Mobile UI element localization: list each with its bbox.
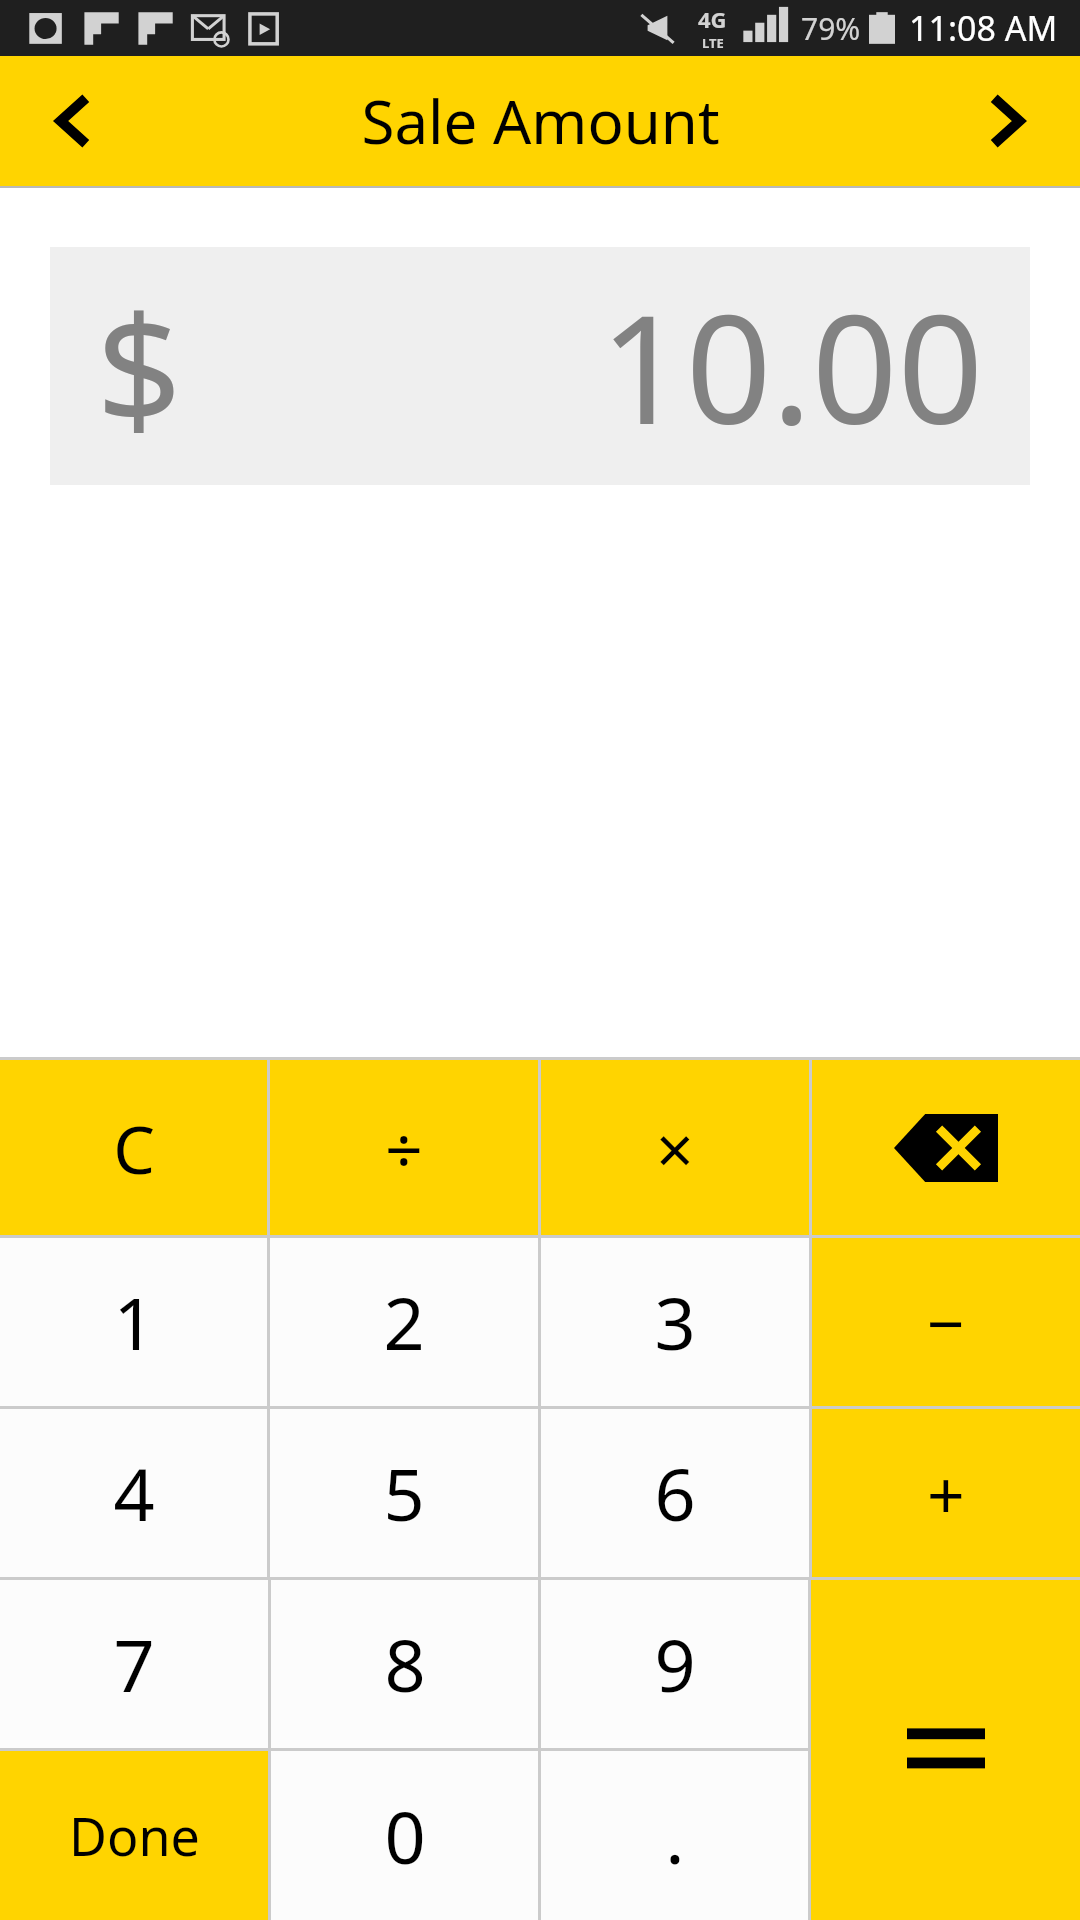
button[interactable]: C	[0, 1060, 267, 1235]
staticText: Sale Amount	[361, 80, 720, 162]
button[interactable]: ×	[541, 1060, 809, 1235]
button[interactable]: $	[50, 247, 1030, 485]
button[interactable]: 4	[0, 1409, 267, 1577]
button[interactable]: .	[541, 1751, 808, 1920]
button[interactable]: 2	[270, 1238, 538, 1406]
button[interactable]: 6	[541, 1409, 809, 1577]
staticText: .	[665, 1787, 685, 1885]
button[interactable]: 3	[541, 1238, 809, 1406]
staticText: $	[96, 264, 182, 468]
staticText: 4	[113, 1444, 155, 1542]
button[interactable]: 7	[0, 1580, 268, 1748]
staticText: 0	[384, 1787, 426, 1885]
staticText: LTE	[702, 34, 724, 52]
staticText: 9	[654, 1615, 696, 1713]
button[interactable]: 1	[0, 1238, 267, 1406]
staticText: 5	[383, 1444, 425, 1542]
staticText: C	[113, 1103, 155, 1193]
staticText: +	[927, 1448, 965, 1538]
staticText: 4G	[698, 4, 727, 34]
button[interactable]: Back	[0, 56, 150, 186]
staticText: Done	[69, 1800, 200, 1871]
button[interactable]: Done	[0, 1751, 268, 1920]
button[interactable]: 0	[271, 1751, 538, 1920]
staticText: ÷	[385, 1103, 423, 1193]
button[interactable]: ÷	[270, 1060, 538, 1235]
staticText: 2	[383, 1273, 425, 1371]
button[interactable]: +	[812, 1409, 1080, 1577]
staticText: 3	[654, 1273, 696, 1371]
button[interactable]: −	[812, 1238, 1080, 1406]
staticText: 79%	[801, 8, 861, 49]
staticText: 10.00	[600, 264, 984, 468]
button[interactable]: Forward	[930, 56, 1080, 186]
button[interactable]: 9	[541, 1580, 808, 1748]
staticText: 6	[654, 1444, 696, 1542]
staticText: −	[927, 1277, 965, 1367]
staticText: ×	[656, 1103, 694, 1193]
button[interactable]: Backspace	[812, 1060, 1080, 1235]
button[interactable]: Equals	[811, 1580, 1080, 1920]
staticText: 1	[113, 1273, 155, 1371]
staticText: 7	[113, 1615, 155, 1713]
staticText: 11:08 AM	[909, 5, 1058, 51]
button[interactable]: 8	[271, 1580, 538, 1748]
staticText: 8	[384, 1615, 426, 1713]
button[interactable]: 5	[270, 1409, 538, 1577]
